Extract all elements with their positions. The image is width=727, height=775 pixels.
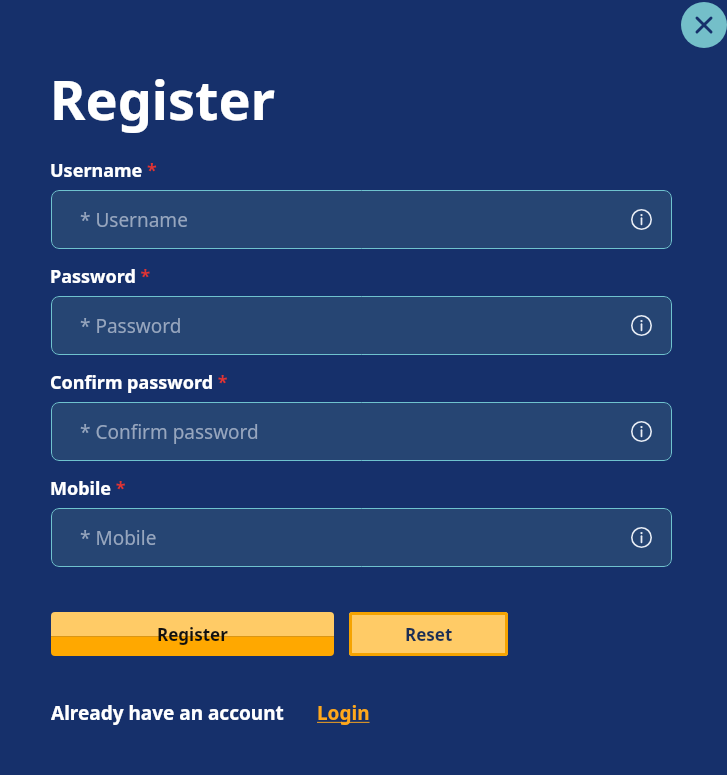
staticText: * Confirm password xyxy=(80,419,259,445)
other: Info xyxy=(631,315,652,336)
staticText: Reset xyxy=(405,623,453,646)
other: Info xyxy=(631,527,652,548)
button[interactable]: Register xyxy=(51,612,334,656)
button[interactable]: * Password xyxy=(51,296,672,355)
staticText: Register xyxy=(50,62,275,136)
staticText: Mobile * xyxy=(50,476,126,501)
staticText: Confirm password * xyxy=(50,370,228,395)
staticText: Login xyxy=(317,700,370,726)
button[interactable]: Reset xyxy=(349,612,508,656)
button[interactable]: * Username xyxy=(51,190,672,249)
button[interactable]: * Confirm password xyxy=(51,402,672,461)
staticText: * Password xyxy=(80,313,182,339)
staticText: * Username xyxy=(80,207,188,233)
staticText: * Mobile xyxy=(80,525,157,551)
other: Info xyxy=(631,209,652,230)
button[interactable]: Login xyxy=(317,700,370,726)
button[interactable]: * Mobile xyxy=(51,508,672,567)
staticText: Already have an account xyxy=(51,700,284,726)
button[interactable]: Close xyxy=(681,2,727,48)
staticText: Register xyxy=(157,623,228,646)
staticText: Password * xyxy=(50,264,151,289)
staticText: Username * xyxy=(50,158,157,183)
other: Info xyxy=(631,421,652,442)
